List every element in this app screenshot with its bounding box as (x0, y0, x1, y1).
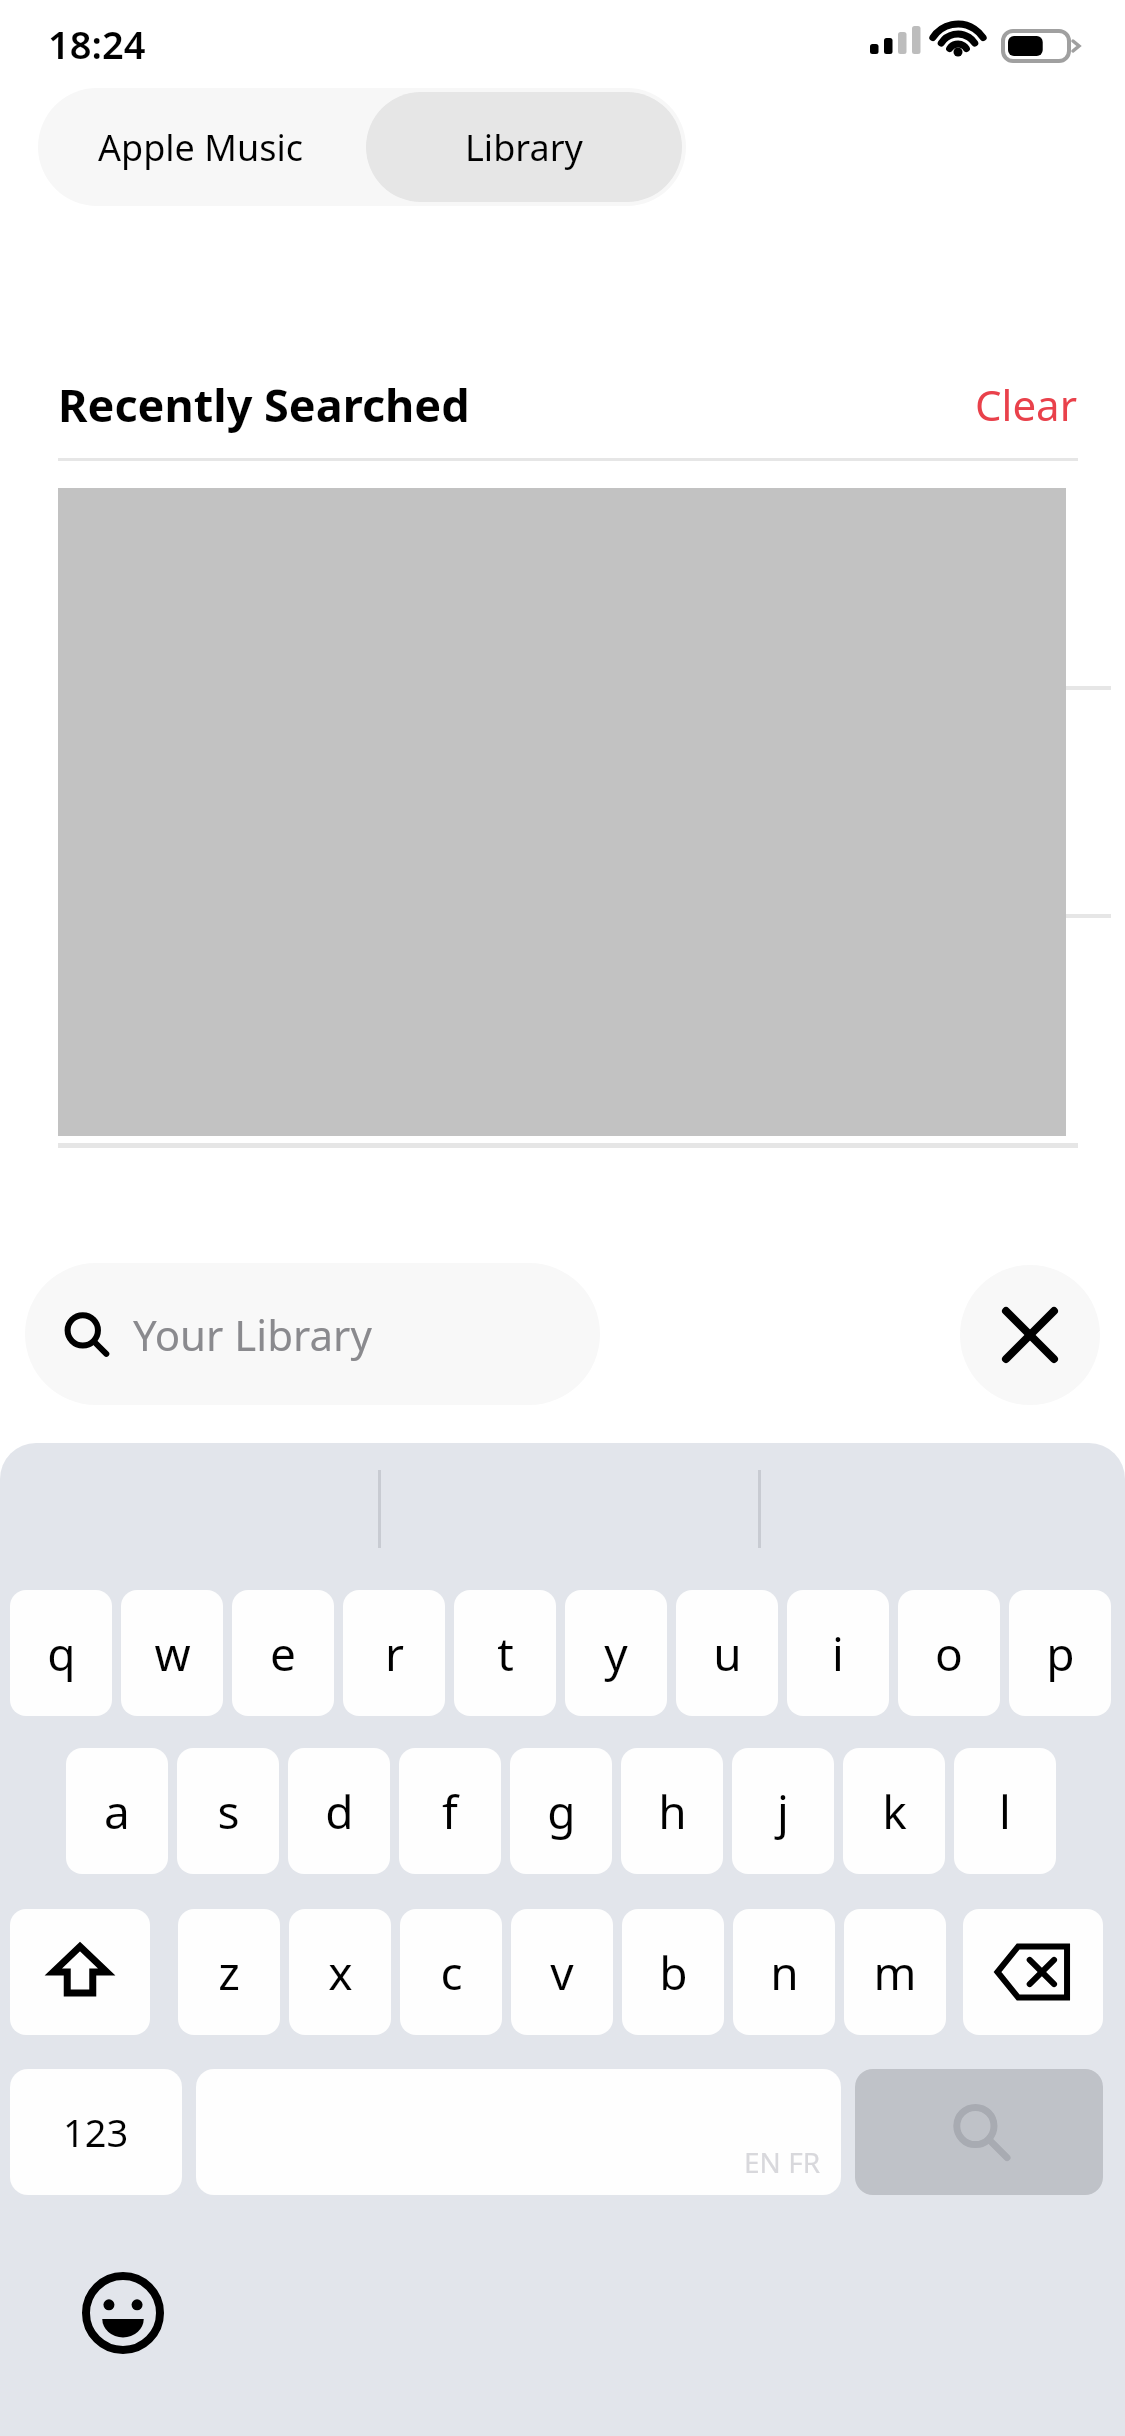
staticText: h (658, 1780, 687, 1843)
button[interactable]: c (400, 1909, 502, 2035)
staticText: u (713, 1622, 742, 1685)
button[interactable]: Emoji keyboard (58, 2248, 188, 2378)
button[interactable]: w (121, 1590, 223, 1716)
staticText: x (328, 1941, 353, 2004)
button[interactable]: u (676, 1590, 778, 1716)
button[interactable]: k (843, 1748, 945, 1874)
button[interactable]: Backspace (963, 1909, 1103, 2035)
staticText: Your Library (133, 1306, 372, 1363)
staticText: i (832, 1622, 844, 1685)
button[interactable]: x (289, 1909, 391, 2035)
staticText: g (547, 1780, 576, 1843)
button[interactable]: Library (366, 92, 682, 202)
staticText: w (154, 1622, 191, 1685)
staticText: y (604, 1622, 628, 1685)
button[interactable]: y (565, 1590, 667, 1716)
button[interactable]: d (288, 1748, 390, 1874)
button[interactable]: o (898, 1590, 1000, 1716)
staticText: a (104, 1780, 130, 1843)
staticText: 123 (63, 2106, 129, 2158)
button[interactable]: r (343, 1590, 445, 1716)
staticText: j (777, 1780, 789, 1843)
button[interactable]: t (454, 1590, 556, 1716)
staticText: b (659, 1941, 688, 2004)
staticText: r (385, 1622, 404, 1685)
staticText: o (935, 1622, 963, 1685)
button[interactable]: Shift (10, 1909, 150, 2035)
staticText: q (47, 1622, 76, 1685)
staticText: 18:24 (48, 18, 146, 70)
button[interactable]: Close search (960, 1265, 1100, 1405)
staticText: t (497, 1622, 514, 1685)
button[interactable]: b (622, 1909, 724, 2035)
button[interactable]: p (1009, 1590, 1111, 1716)
button[interactable]: f (399, 1748, 501, 1874)
staticText: p (1046, 1622, 1075, 1685)
staticText: s (217, 1780, 240, 1843)
button[interactable]: v (511, 1909, 613, 2035)
button[interactable]: n (733, 1909, 835, 2035)
button[interactable]: Apple Music (38, 88, 362, 206)
button[interactable]: Your Library (25, 1263, 600, 1405)
button[interactable]: z (178, 1909, 280, 2035)
staticText: e (270, 1622, 296, 1685)
staticText: c (440, 1941, 463, 2004)
button[interactable]: g (510, 1748, 612, 1874)
button[interactable]: h (621, 1748, 723, 1874)
staticText: EN FR (744, 2143, 821, 2181)
staticText: f (442, 1780, 458, 1843)
button[interactable]: j (732, 1748, 834, 1874)
staticText: z (218, 1941, 240, 2004)
button[interactable]: q (10, 1590, 112, 1716)
staticText: Library (465, 123, 583, 172)
button[interactable]: s (177, 1748, 279, 1874)
button[interactable]: a (66, 1748, 168, 1874)
button[interactable]: Space (196, 2069, 841, 2195)
staticText: l (999, 1780, 1011, 1843)
staticText: m (873, 1941, 917, 2004)
staticText: Apple Music (98, 123, 303, 172)
staticText: d (325, 1780, 354, 1843)
button[interactable]: m (844, 1909, 946, 2035)
staticText: Clear (975, 376, 1077, 433)
staticText: v (550, 1941, 574, 2004)
staticText: k (882, 1780, 907, 1843)
button[interactable]: e (232, 1590, 334, 1716)
button[interactable]: 123 (10, 2069, 182, 2195)
staticText: n (770, 1941, 799, 2004)
button[interactable]: l (954, 1748, 1056, 1874)
staticText: Recently Searched (58, 374, 470, 435)
button[interactable]: i (787, 1590, 889, 1716)
button[interactable]: Search (855, 2069, 1103, 2195)
button[interactable]: Clear (965, 370, 1087, 439)
